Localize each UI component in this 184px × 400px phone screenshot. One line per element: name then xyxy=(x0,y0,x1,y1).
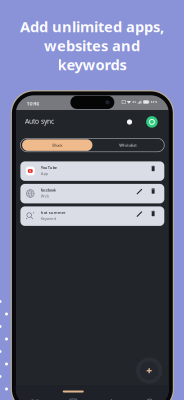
staticText: Auto sync xyxy=(25,117,54,126)
staticText: websites and xyxy=(44,36,140,55)
button[interactable]: Settings xyxy=(131,385,169,400)
button[interactable]: hot summer xyxy=(20,206,164,226)
button[interactable]: Block xyxy=(21,138,93,152)
button[interactable]: Blocked xyxy=(16,385,54,400)
button[interactable]: facebook xyxy=(20,184,164,203)
button[interactable]: YouTube xyxy=(20,161,164,181)
button[interactable]: Whitelist xyxy=(92,138,164,152)
staticText: keywords xyxy=(57,55,126,74)
staticText: Add unlimited apps, xyxy=(20,17,164,36)
button[interactable]: Add item xyxy=(136,358,162,384)
staticText: 88% xyxy=(151,100,157,104)
staticText: Whitelist xyxy=(119,142,137,148)
staticText: facebook xyxy=(41,187,56,192)
staticText: hot summer xyxy=(41,210,66,215)
staticText: Block xyxy=(52,142,62,148)
button[interactable]: Schedule xyxy=(54,385,92,400)
button[interactable]: Sync now xyxy=(145,115,158,128)
staticText: App xyxy=(41,171,48,176)
staticText: Web xyxy=(41,193,49,199)
staticText: YouTube xyxy=(41,165,57,170)
staticText: Keyword xyxy=(41,216,56,221)
staticText: 4G xyxy=(132,100,136,104)
staticText: 10:40 xyxy=(26,100,39,107)
